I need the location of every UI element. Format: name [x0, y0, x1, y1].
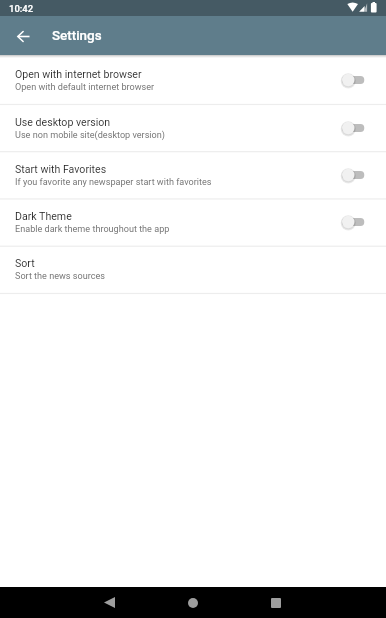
staticText: Dark Theme: [15, 210, 72, 222]
staticText: 10:42: [9, 3, 34, 14]
staticText: Sort: [15, 257, 35, 269]
staticText: If you favorite any newspaper start with…: [15, 177, 212, 188]
staticText: Use non mobile site(desktop version): [15, 130, 165, 141]
staticText: Use desktop version: [15, 116, 111, 128]
button[interactable]: Recent apps: [260, 587, 291, 618]
button[interactable]: Back: [94, 587, 125, 618]
staticText: Sort the news sources: [15, 271, 105, 282]
staticText: Settings: [52, 28, 102, 44]
button[interactable]: Dark Theme: [0, 199, 386, 245]
button[interactable]: Home: [177, 587, 208, 618]
staticText: Open with default internet browser: [15, 82, 155, 93]
staticText: Start with Favorites: [15, 163, 107, 175]
button[interactable]: Use desktop version: [0, 105, 386, 151]
button[interactable]: Open with internet browser: [0, 57, 386, 103]
button[interactable]: Back: [5, 18, 41, 54]
staticText: Enable dark theme throughout the app: [15, 224, 170, 235]
button[interactable]: Start with Favorites: [0, 152, 386, 198]
staticText: Open with internet browser: [15, 68, 142, 80]
button[interactable]: Sort: [0, 246, 386, 292]
